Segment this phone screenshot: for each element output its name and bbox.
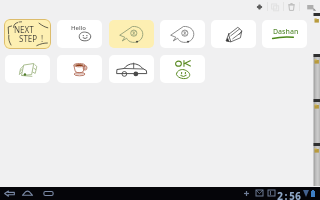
button[interactable]: Add xyxy=(254,1,265,13)
button[interactable]: Folder xyxy=(313,143,320,154)
button[interactable]: Folder xyxy=(313,13,320,24)
button[interactable]: Home xyxy=(22,189,33,198)
button[interactable]: Folder xyxy=(313,54,320,65)
staticText: 2:56 xyxy=(277,189,301,200)
button[interactable] xyxy=(160,55,205,83)
button[interactable]: Keyboard xyxy=(303,0,318,14)
staticText: Hello xyxy=(71,24,86,32)
button[interactable] xyxy=(160,20,205,48)
button[interactable] xyxy=(5,55,50,83)
button[interactable]: Folder xyxy=(313,99,320,110)
button[interactable]: Hello xyxy=(57,20,102,48)
button[interactable]: Recents xyxy=(43,189,54,198)
button[interactable]: Back xyxy=(4,189,15,198)
button[interactable]: Duplicate xyxy=(270,1,281,13)
staticText: STEP xyxy=(19,33,38,44)
staticText: NEXT xyxy=(14,24,34,35)
staticText: ! xyxy=(41,33,44,44)
button[interactable] xyxy=(109,55,154,83)
staticText: Dashan xyxy=(273,27,299,37)
button[interactable] xyxy=(109,20,154,48)
button[interactable]: Delete xyxy=(286,1,297,13)
button[interactable]: Dashan xyxy=(262,20,307,48)
button[interactable]: NEXT xyxy=(4,19,51,49)
button[interactable] xyxy=(57,55,102,83)
button[interactable] xyxy=(211,20,256,48)
